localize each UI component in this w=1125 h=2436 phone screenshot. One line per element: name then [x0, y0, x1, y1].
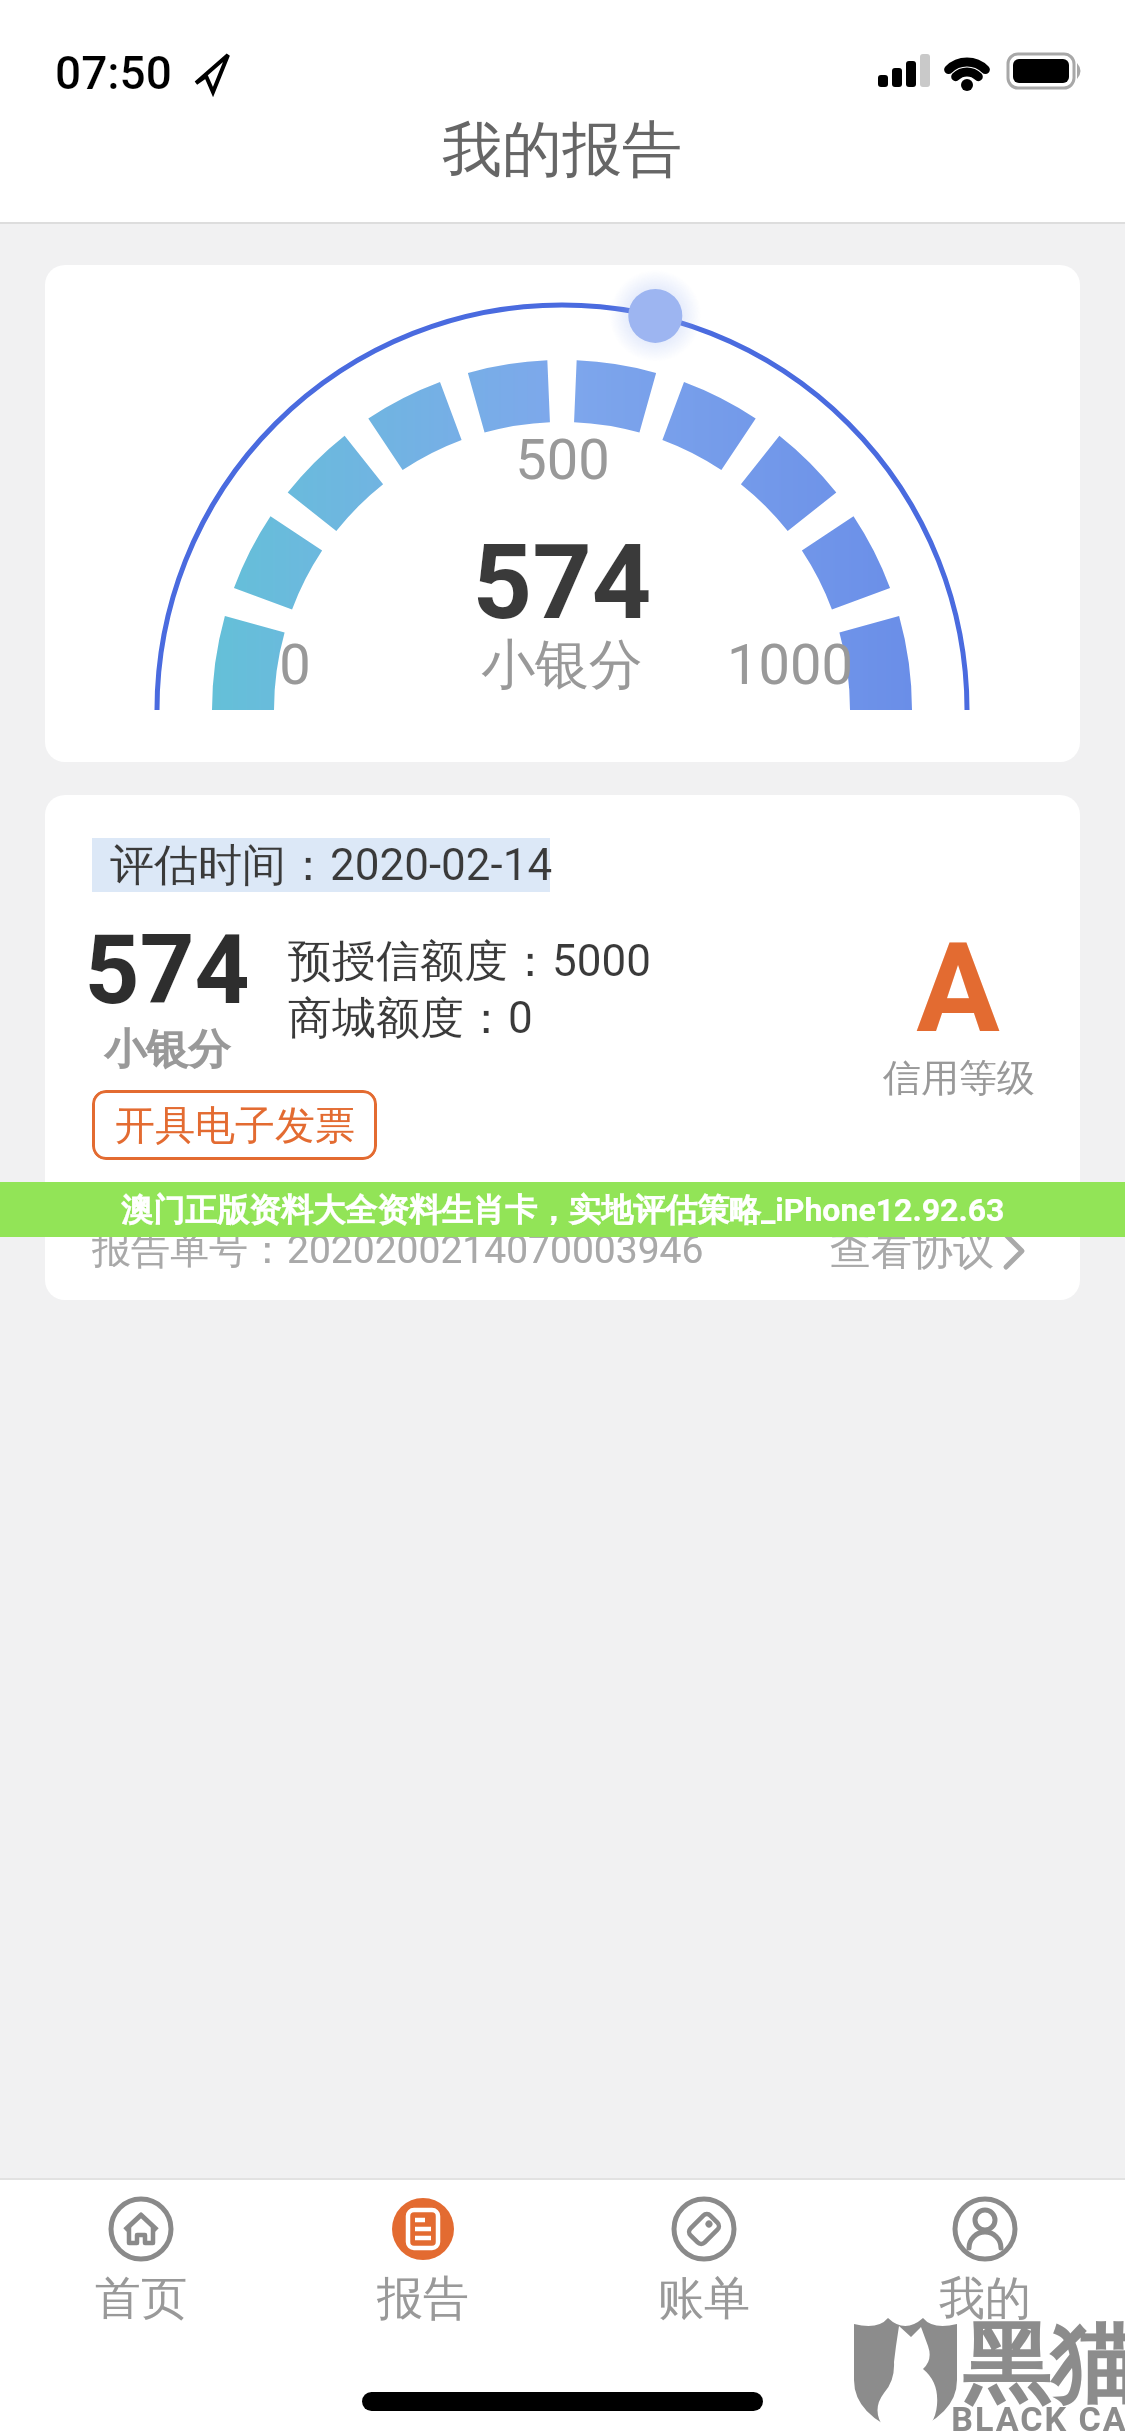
staticText: 500 [515, 427, 610, 493]
button[interactable]: 查看协议 [830, 1223, 1034, 1279]
staticText: 1000 [727, 632, 853, 698]
button[interactable]: 澳门正版资料大全资料生肖卡，实地评估策略_iPhone12.92.63 [0, 1182, 1125, 1237]
staticText: 我的报告 [442, 112, 682, 188]
staticText: A [916, 916, 1000, 1061]
staticText: 我的 [939, 2270, 1031, 2328]
staticText: 预授信额度：5000 [288, 934, 651, 989]
staticText: 报告 [377, 2270, 469, 2328]
staticText: 574 [84, 914, 250, 1027]
staticText: 小银分 [481, 631, 643, 699]
staticText: 查看协议 [830, 1225, 994, 1277]
staticText: 商城额度：0 [288, 991, 533, 1046]
button[interactable]: 开具电子发票 [92, 1090, 377, 1160]
button[interactable]: 报告 [282, 2178, 563, 2358]
button[interactable]: 首页 [0, 2178, 282, 2358]
staticText: 07:50 [55, 46, 172, 100]
staticText: 首页 [95, 2270, 187, 2328]
button[interactable]: 我的 [844, 2178, 1125, 2358]
staticText: 0 [279, 632, 311, 698]
staticText: 黑猫 [962, 2309, 1125, 2420]
staticText: 澳门正版资料大全资料生肖卡，实地评估策略_iPhone12.92.63 [121, 1190, 1005, 1230]
staticText: 小银分 [104, 1024, 230, 1077]
staticText: 信用等级 [883, 1054, 1035, 1102]
staticText: 评估时间：2020-02-14 [110, 838, 553, 893]
staticText: 账单 [658, 2270, 750, 2328]
staticText: 574 [472, 522, 652, 644]
button[interactable]: 账单 [563, 2178, 844, 2358]
staticText: BLACK CAT [951, 2399, 1125, 2436]
staticText: 报告单号：2020200214070003946 [92, 1225, 704, 1274]
staticText: 开具电子发票 [115, 1100, 355, 1150]
